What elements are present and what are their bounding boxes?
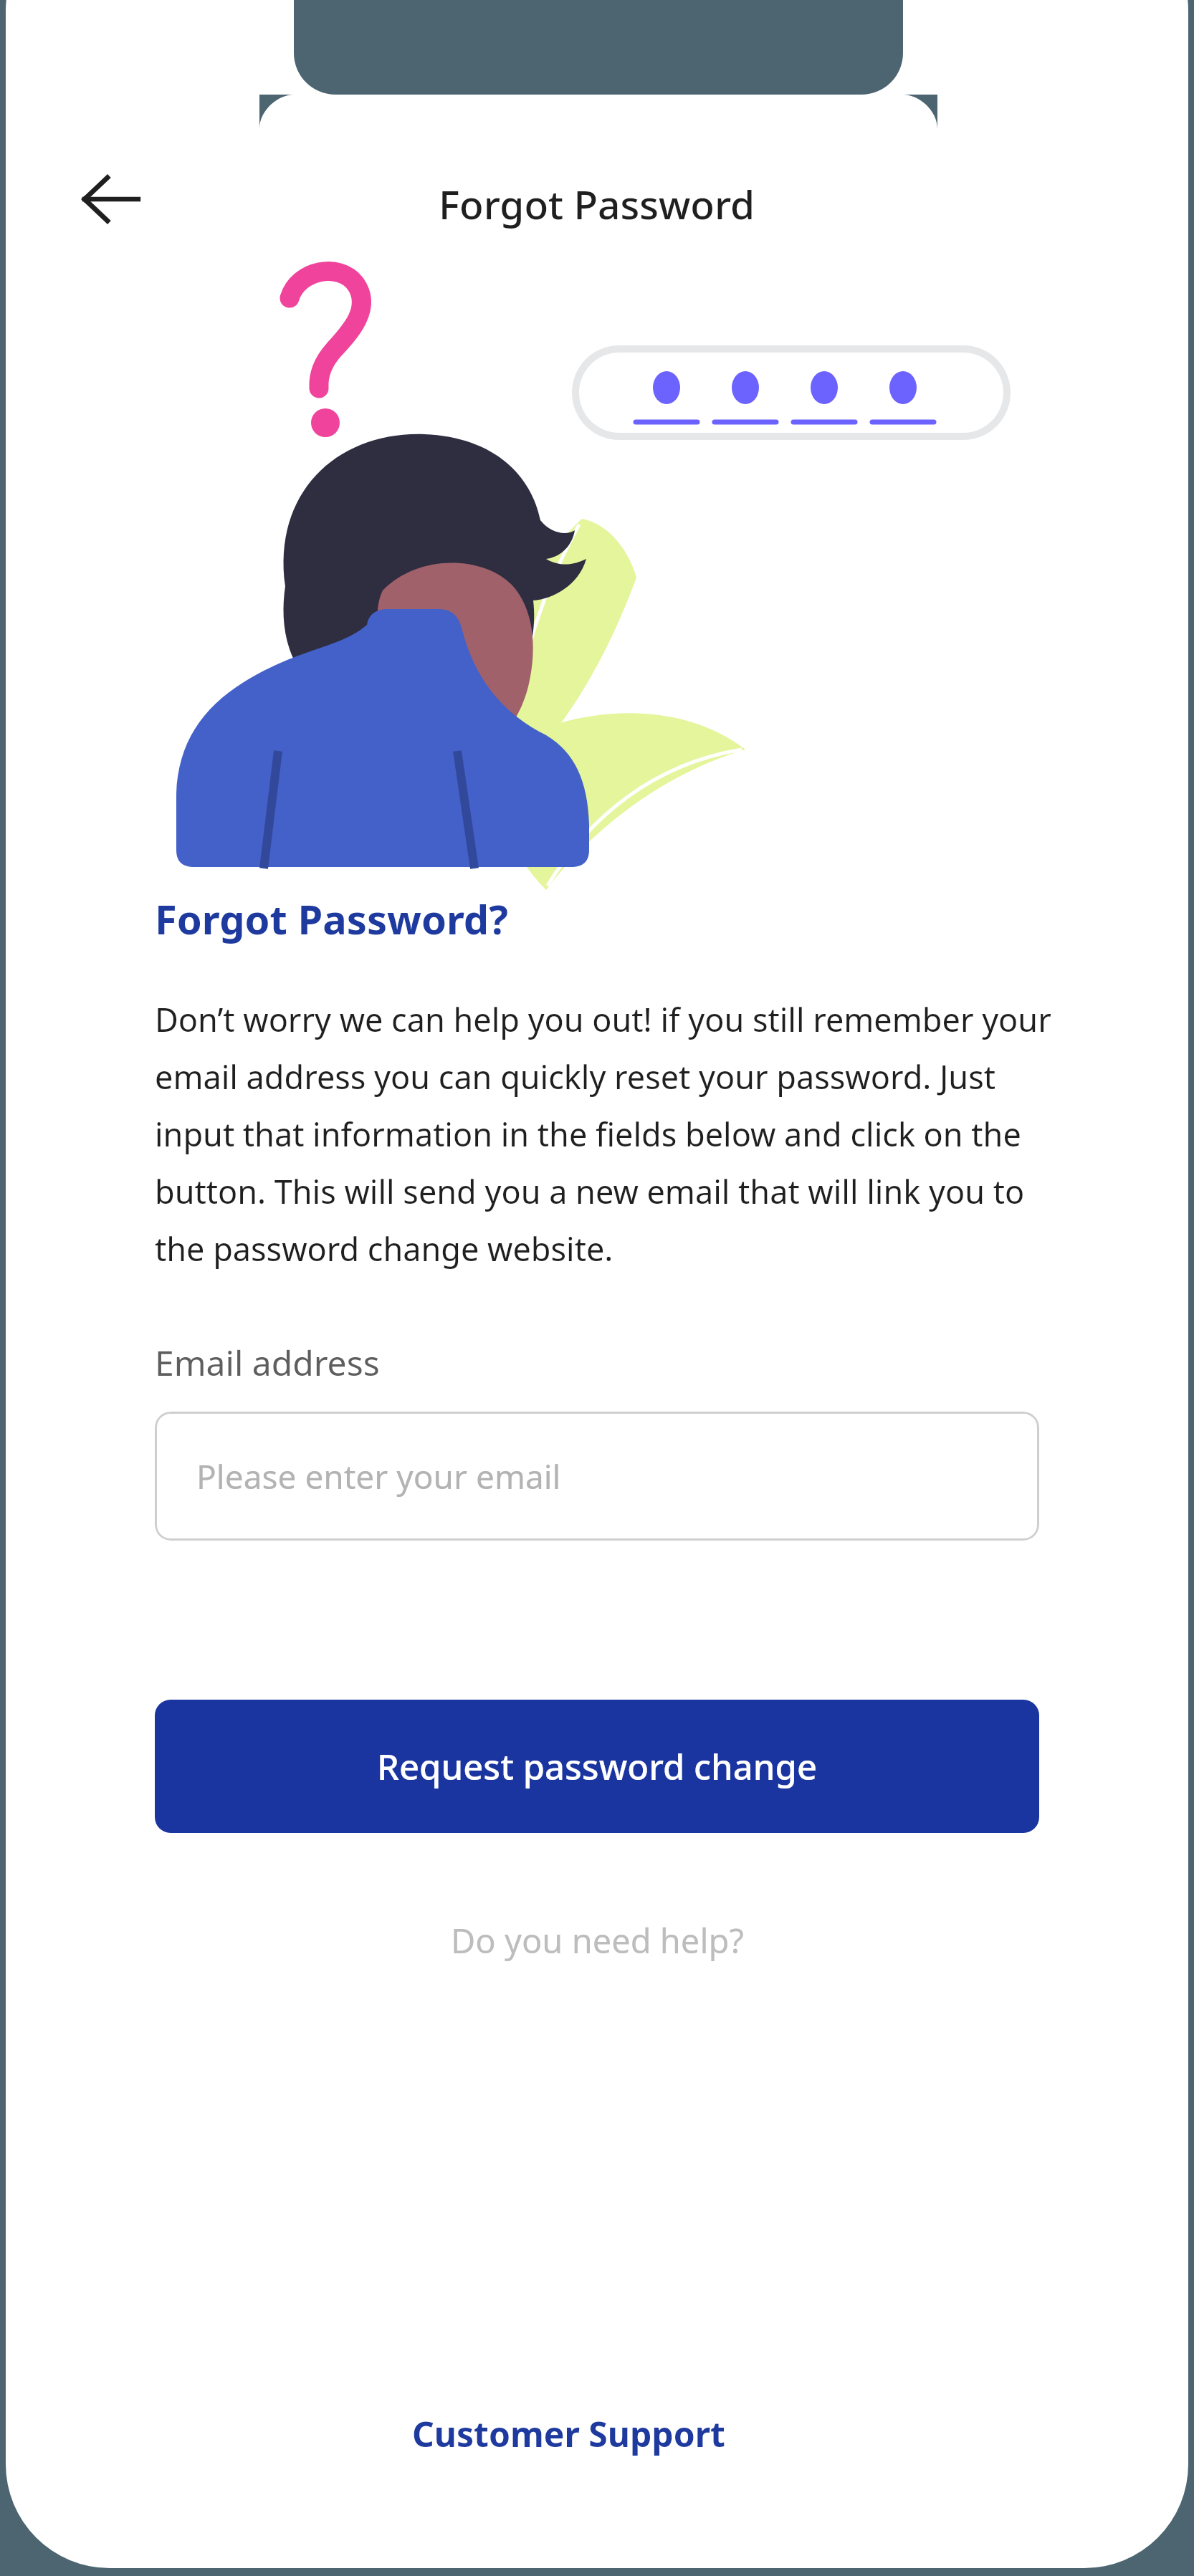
staticText: Forgot Password? [155,891,508,946]
staticText: Customer Support [412,2410,725,2457]
staticText: Forgot Password [439,177,755,231]
staticText: Please enter your email [196,1454,561,1499]
staticText: Email address [155,1339,380,1386]
button[interactable]: Customer Support [383,2399,754,2469]
button[interactable]: Please enter your email [155,1412,1039,1541]
button[interactable]: Request password change [155,1700,1039,1833]
staticText: Don’t worry we can help you out! if you … [155,997,1054,1270]
button[interactable]: Back [71,159,151,239]
staticText: Do you need help? [451,1917,744,1963]
button[interactable]: Do you need help? [422,1907,773,1973]
staticText: Request password change [377,1743,818,1791]
